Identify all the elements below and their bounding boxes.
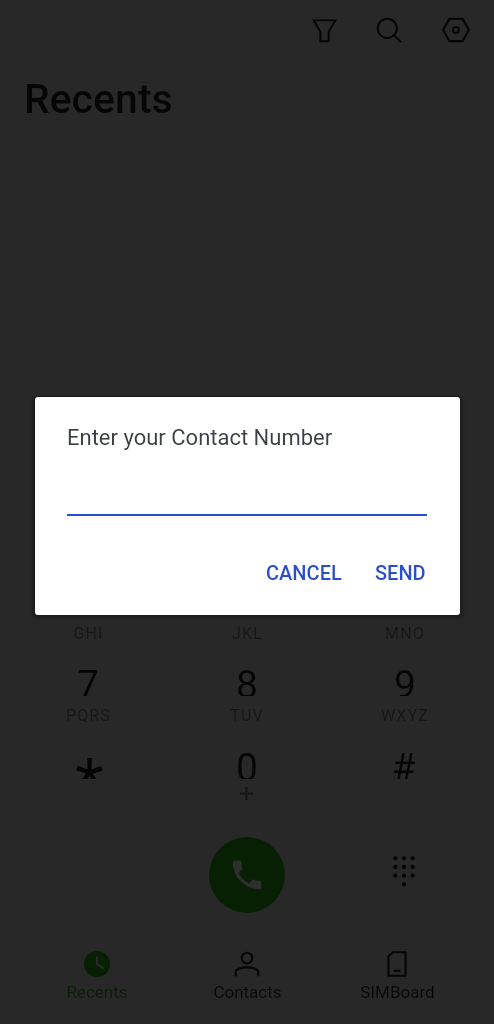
button[interactable]: Filter	[306, 12, 342, 48]
button[interactable]: *	[44, 745, 134, 779]
button[interactable]: 8	[202, 662, 292, 696]
staticText: SEND	[375, 561, 426, 584]
staticText: 7	[77, 662, 99, 696]
button[interactable]: 7	[43, 662, 133, 696]
button[interactable]: Call	[209, 837, 285, 913]
staticText: 8	[236, 662, 258, 696]
staticText: TUV	[230, 706, 264, 722]
staticText: MNO	[385, 624, 425, 640]
staticText: GHI	[73, 624, 104, 640]
button[interactable]: Show dialpad	[381, 844, 427, 890]
staticText: WXYZ	[381, 706, 429, 722]
staticText: *	[75, 745, 104, 779]
button[interactable]: CANCEL	[254, 552, 354, 593]
staticText: Recents	[24, 75, 173, 123]
staticText: 9	[394, 662, 416, 696]
staticText: PQRS	[66, 706, 111, 722]
button[interactable]: #	[358, 745, 448, 779]
staticText: Enter your Contact Number	[67, 425, 333, 451]
button[interactable]: Recents	[37, 938, 157, 1014]
staticText: CANCEL	[266, 561, 342, 584]
staticText: SIMBoard	[360, 982, 435, 1002]
button[interactable]: 0	[202, 745, 292, 779]
button[interactable]: Settings	[438, 12, 474, 48]
button[interactable]: SEND	[363, 552, 438, 593]
staticText: Contacts	[213, 982, 282, 1002]
staticText: #	[391, 745, 416, 779]
button[interactable]: SIMBoard	[337, 938, 457, 1014]
button[interactable]: 9	[360, 662, 450, 696]
staticText: JKL	[232, 624, 263, 640]
staticText: Recents	[66, 982, 128, 1002]
button[interactable]: Search	[371, 12, 407, 48]
staticText: 0	[236, 745, 258, 779]
button[interactable]: Contacts	[187, 938, 307, 1014]
